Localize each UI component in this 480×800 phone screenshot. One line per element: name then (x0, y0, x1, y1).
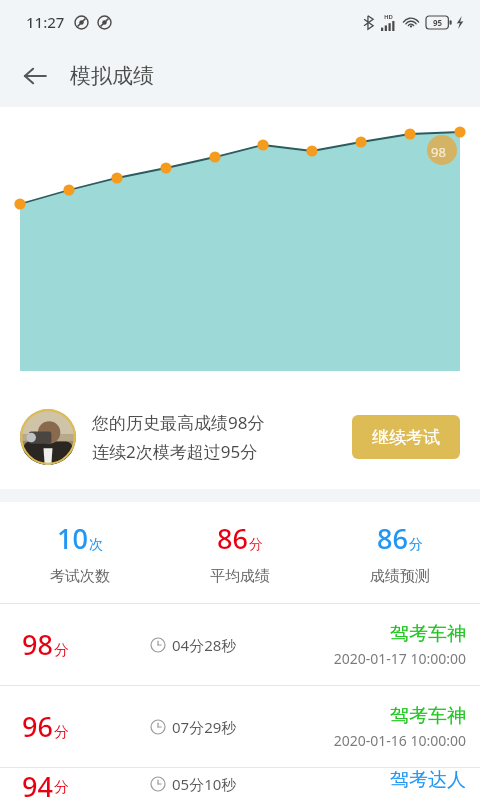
staticText: 10 (57, 520, 88, 557)
button[interactable]: 86 (320, 502, 480, 603)
staticText: 2020-01-16 10:00:00 (333, 731, 466, 750)
staticText: 94 (22, 768, 53, 800)
button[interactable]: 10 (0, 502, 160, 603)
staticText: 分 (54, 778, 69, 797)
staticText: 模拟成绩 (70, 63, 154, 89)
staticText: 96 (22, 708, 53, 745)
button[interactable]: 98 (0, 604, 480, 685)
button[interactable]: Back (12, 53, 58, 99)
button[interactable]: 继续考试 (352, 415, 460, 459)
staticText: 98 (22, 626, 53, 663)
staticText: 次 (89, 536, 103, 554)
staticText: 分 (54, 641, 69, 660)
staticText: 分 (249, 536, 263, 554)
staticText: 分 (409, 536, 423, 554)
staticText: 07分29秒 (172, 717, 237, 737)
staticText: 继续考试 (372, 427, 440, 448)
staticText: 驾考达人 (390, 768, 466, 792)
staticText: 您的历史最高成绩98分 (92, 411, 265, 434)
staticText: HD (384, 13, 393, 21)
staticText: 11:27 (26, 12, 65, 32)
staticText: 2020-01-17 10:00:00 (333, 649, 466, 668)
staticText: 成绩预测 (370, 567, 430, 586)
button[interactable]: 94 (0, 768, 480, 800)
staticText: 04分28秒 (172, 635, 237, 655)
staticText: 05分10秒 (172, 774, 237, 794)
button[interactable]: 96 (0, 686, 480, 767)
staticText: 考试次数 (50, 567, 110, 586)
staticText: 驾考车神 (390, 704, 466, 728)
staticText: 分 (54, 723, 69, 742)
staticText: 连续2次模考超过95分 (92, 440, 258, 463)
staticText: 平均成绩 (210, 567, 270, 586)
staticText: 驾考车神 (390, 622, 466, 646)
staticText: 95 (433, 17, 443, 28)
staticText: 98 (431, 143, 446, 161)
button[interactable]: 86 (160, 502, 320, 603)
staticText: 86 (217, 520, 248, 557)
staticText: 86 (377, 520, 408, 557)
